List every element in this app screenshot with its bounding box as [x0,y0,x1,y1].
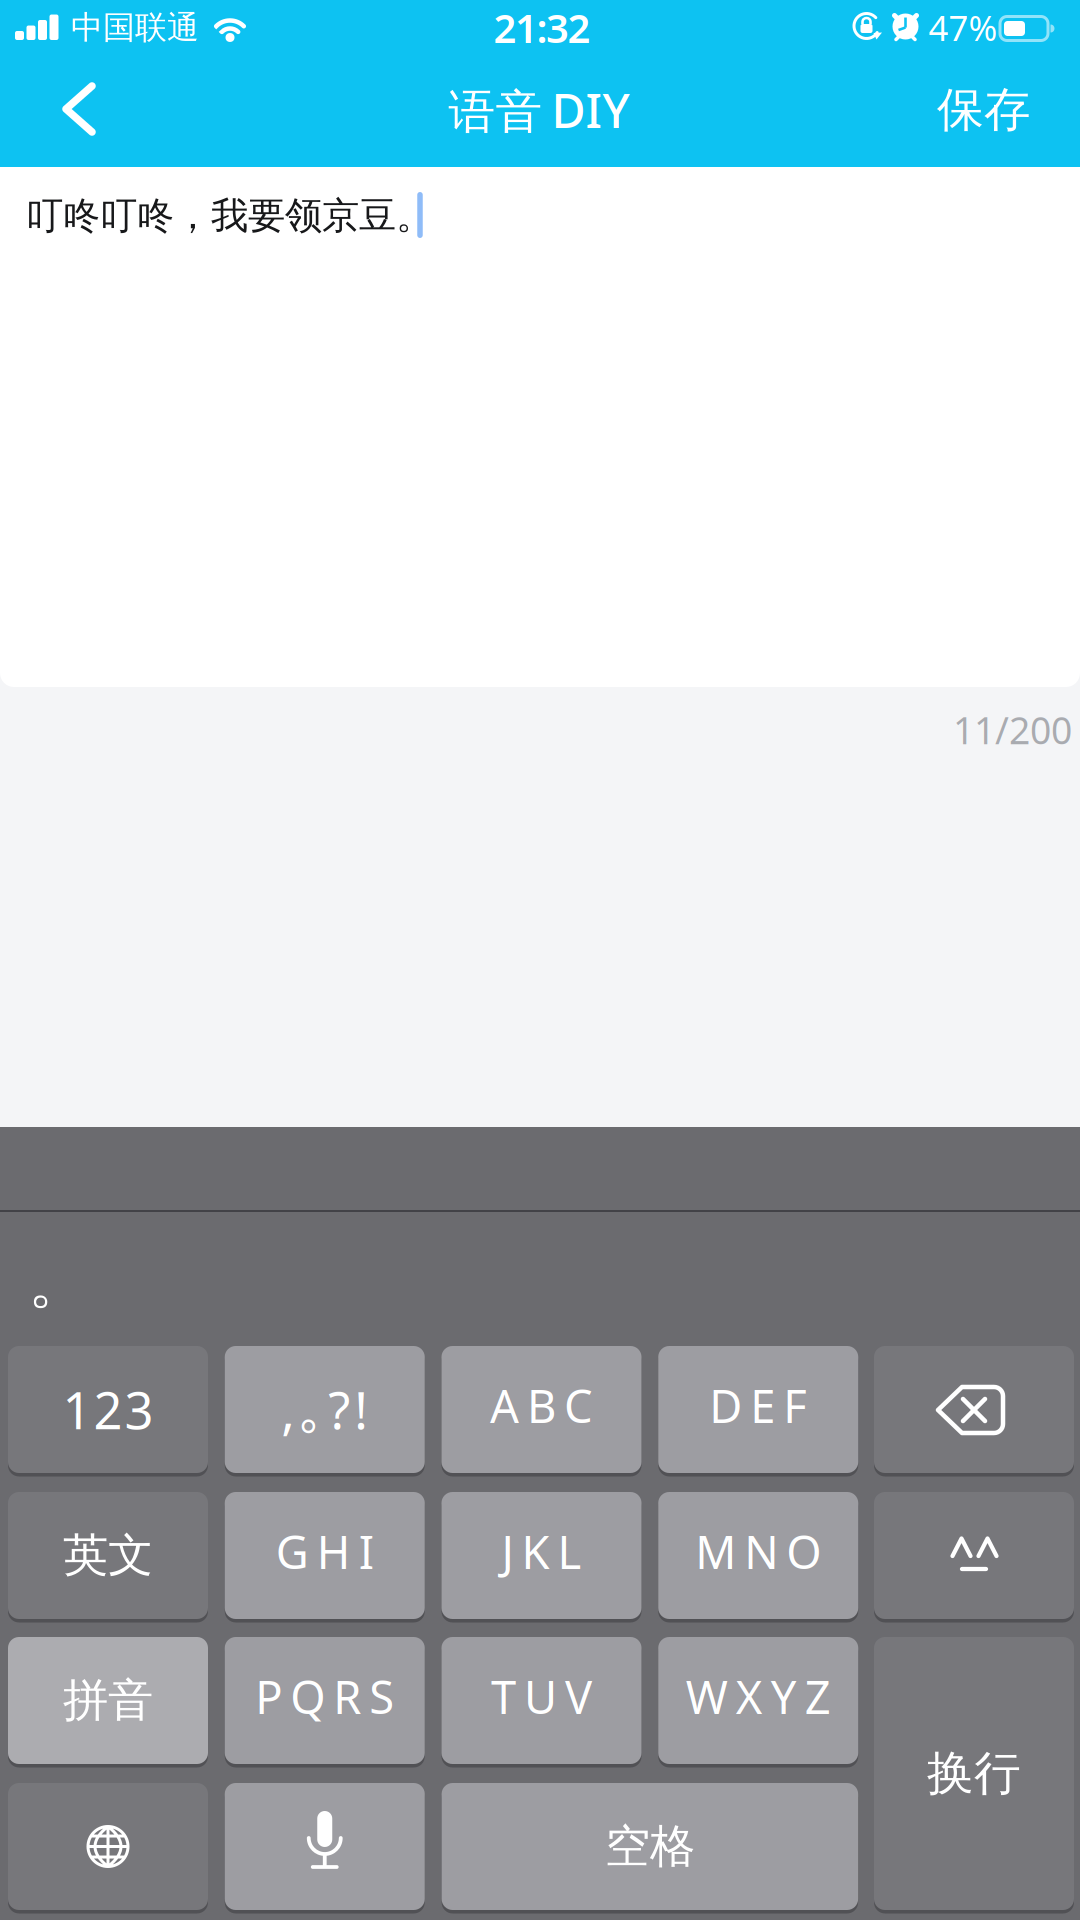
staticText: 123 [62,1376,153,1443]
button[interactable]: DEF [658,1346,858,1473]
staticText: JKL [501,1521,581,1582]
staticText: TUV [491,1666,592,1727]
button[interactable]: 。 [28,1245,88,1319]
staticText: 叮咚叮咚，我要领京豆。 [26,193,433,239]
button[interactable]: ,｡?! [225,1346,425,1473]
button[interactable]: 空格 [442,1783,858,1910]
staticText: GHI [276,1521,374,1582]
staticText: 换行 [927,1745,1021,1802]
button[interactable]: GHI [225,1492,425,1619]
staticText: 保存 [937,81,1031,139]
staticText: 英文 [63,1528,153,1583]
button[interactable]: MNO [658,1492,858,1619]
button[interactable]: TUV [441,1637,641,1764]
staticText: 语音 DIY [448,79,629,141]
staticText: ABC [490,1375,593,1436]
staticText: 。 [28,1245,88,1319]
staticText: ,｡?! [281,1376,368,1443]
staticText: DEF [709,1375,807,1436]
button[interactable]: PQRS [225,1637,425,1764]
staticText: 拼音 [63,1673,153,1728]
staticText: MNO [695,1521,821,1582]
staticText: PQRS [255,1666,394,1727]
button[interactable]: 英文 [8,1492,208,1619]
button[interactable]: 返回 [24,62,134,156]
staticText: 21:32 [493,1,590,54]
button[interactable]: 切换键盘 [8,1783,208,1910]
staticText: 47% [928,4,997,50]
button[interactable]: 删除 [874,1346,1074,1473]
staticText: 中国联通 [71,8,199,47]
button[interactable]: JKL [441,1492,641,1619]
button[interactable]: 拼音 [8,1637,208,1764]
button[interactable]: 保存 [914,63,1054,157]
button[interactable]: 换行 [874,1637,1074,1910]
button[interactable]: 表情 [874,1492,1074,1619]
button[interactable]: 123 [8,1346,208,1473]
button[interactable]: WXYZ [658,1637,858,1764]
staticText: WXYZ [686,1666,831,1727]
button[interactable]: ABC [441,1346,641,1473]
button[interactable]: 听写 [225,1783,425,1910]
staticText: 11/200 [953,705,1072,755]
staticText: 空格 [605,1819,695,1874]
